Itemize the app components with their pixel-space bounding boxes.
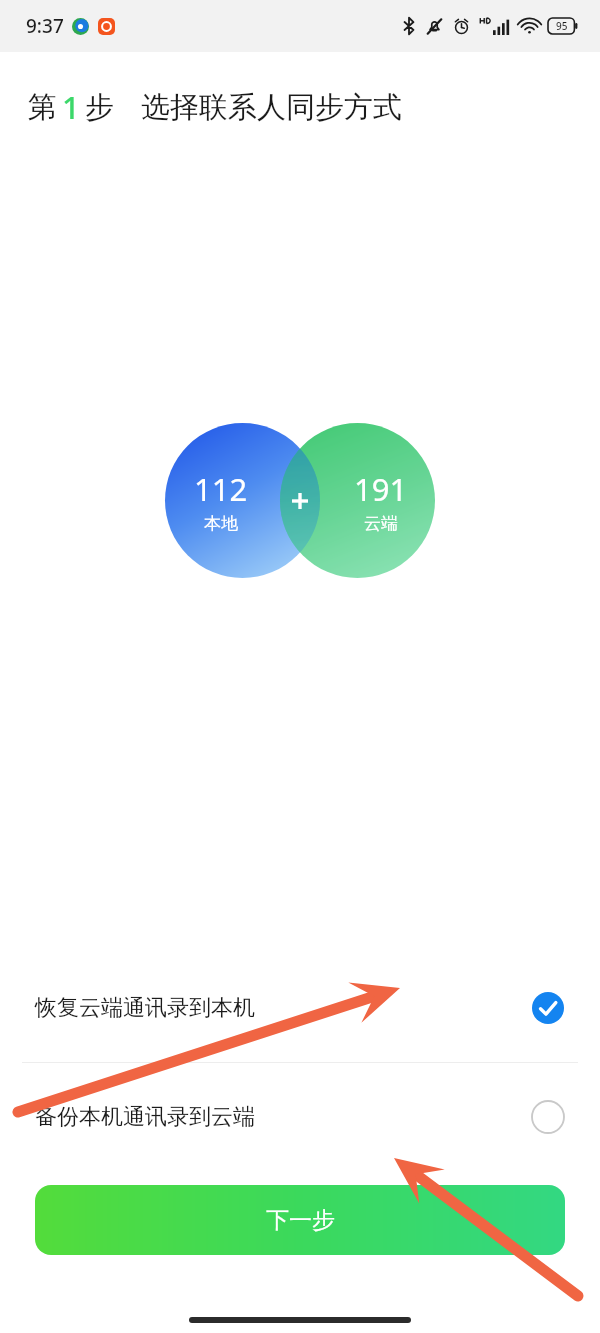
staticText: 191	[354, 468, 408, 510]
button[interactable]: 备份本机通讯录到云端	[0, 1063, 600, 1171]
staticText: 恢复云端通讯录到本机	[35, 994, 531, 1022]
staticText: 步	[85, 89, 114, 126]
staticText: 112	[194, 468, 248, 510]
staticText: 9:37	[26, 13, 64, 39]
staticText: 备份本机通讯录到云端	[35, 1103, 531, 1131]
staticText: 95	[556, 19, 568, 33]
button[interactable]: 下一步	[35, 1185, 565, 1255]
staticText: 选择联系人同步方式	[141, 89, 402, 126]
staticText: 第	[28, 89, 57, 126]
staticText: 云端	[364, 513, 398, 534]
button[interactable]: 恢复云端通讯录到本机	[0, 954, 600, 1062]
staticText: 本地	[204, 513, 238, 534]
staticText: 下一步	[266, 1206, 335, 1235]
staticText: 1	[62, 86, 80, 128]
